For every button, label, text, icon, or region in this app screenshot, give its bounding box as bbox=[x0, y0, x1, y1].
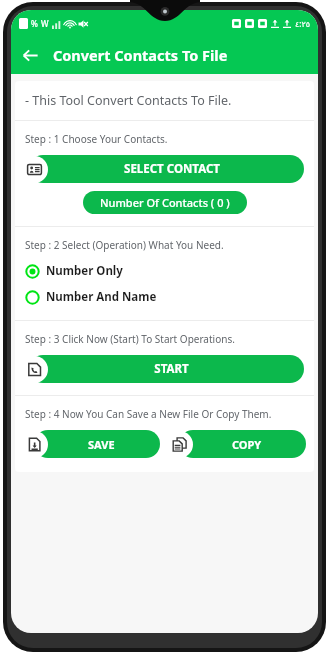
staticText: Step : 2 Select (Operation) What You Nee… bbox=[25, 238, 224, 252]
staticText: SELECT CONTACT bbox=[124, 161, 220, 177]
other: Copy bbox=[166, 431, 193, 458]
button[interactable]: SAVE bbox=[21, 430, 160, 458]
staticText: Number Of Contacts ( 0 ) bbox=[100, 195, 230, 210]
other: Save bbox=[21, 431, 48, 458]
other: Start bbox=[21, 356, 48, 383]
button[interactable]: SELECT CONTACT bbox=[15, 155, 314, 183]
staticText: Step : 1 Choose Your Contacts. bbox=[25, 132, 168, 146]
button[interactable]: Back bbox=[11, 36, 49, 74]
staticText: Number And Name bbox=[46, 289, 157, 305]
button[interactable]: START bbox=[15, 355, 314, 383]
staticText: Convert Contacts To File bbox=[53, 45, 228, 65]
staticText: Number Only bbox=[46, 263, 123, 279]
staticText: - This Tool Convert Contacts To File. bbox=[25, 92, 232, 109]
staticText: ٤:٢٥ bbox=[295, 18, 311, 29]
button[interactable]: Number And Name bbox=[15, 287, 314, 307]
button[interactable]: Number Of Contacts ( 0 ) bbox=[83, 191, 247, 214]
staticText: START bbox=[154, 361, 189, 377]
button[interactable]: Number Only bbox=[15, 261, 314, 281]
staticText: Step : 3 Click Now (Start) To Start Oper… bbox=[25, 332, 235, 346]
staticText: % bbox=[31, 18, 38, 29]
staticText: SAVE bbox=[88, 437, 115, 452]
staticText: W bbox=[41, 18, 49, 29]
staticText: COPY bbox=[232, 437, 262, 452]
button[interactable]: COPY bbox=[166, 430, 306, 458]
staticText: Step : 4 Now You Can Save a New File Or … bbox=[25, 407, 272, 421]
other: Select contact bbox=[21, 156, 48, 183]
